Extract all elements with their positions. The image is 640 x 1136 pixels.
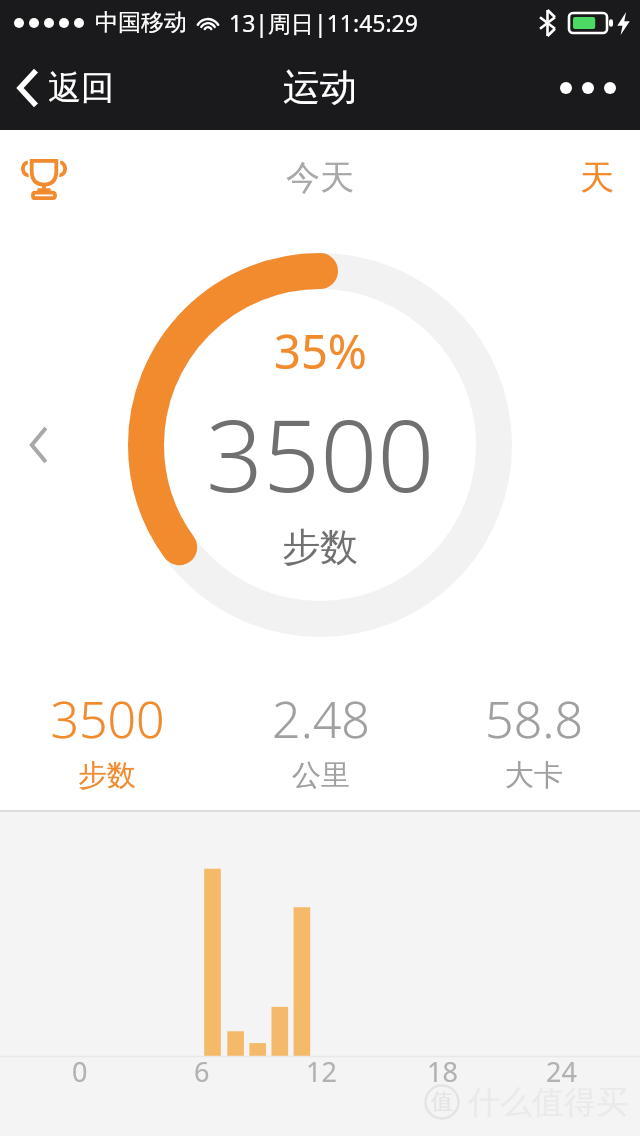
button[interactable]: Previous day xyxy=(16,414,62,476)
button[interactable]: 3500 xyxy=(0,665,214,810)
staticText: 6 xyxy=(194,1053,210,1090)
staticText: 步数 xyxy=(282,523,358,571)
button[interactable]: 天 xyxy=(554,140,640,215)
staticText: 0 xyxy=(72,1053,88,1090)
staticText: 天 xyxy=(580,156,614,199)
button[interactable]: 58.8 xyxy=(427,665,640,810)
button[interactable]: Achievements xyxy=(12,147,76,209)
staticText: 35% xyxy=(274,319,367,383)
staticText: 13|周日|11:45:29 xyxy=(229,7,418,38)
staticText: 运动 xyxy=(283,64,357,111)
staticText: 值 xyxy=(431,1088,453,1116)
button[interactable]: 返回 xyxy=(0,57,134,119)
staticText: 大卡 xyxy=(505,757,563,794)
staticText: 24 xyxy=(546,1053,577,1090)
staticText: 3500 xyxy=(50,685,165,753)
staticText: 18 xyxy=(427,1053,458,1090)
button[interactable]: More options xyxy=(536,58,640,118)
staticText: 什么值得买 xyxy=(468,1082,628,1122)
staticText: 公里 xyxy=(292,757,350,794)
staticText: 今天 xyxy=(286,156,354,199)
staticText: 58.8 xyxy=(485,685,583,753)
staticText: 步数 xyxy=(78,757,136,794)
staticText: 12 xyxy=(306,1053,337,1090)
staticText: 3500 xyxy=(206,385,435,521)
staticText: 中国移动 xyxy=(95,8,187,37)
button[interactable]: 2.48 xyxy=(214,665,427,810)
staticText: 返回 xyxy=(48,67,114,109)
staticText: 2.48 xyxy=(272,685,370,753)
